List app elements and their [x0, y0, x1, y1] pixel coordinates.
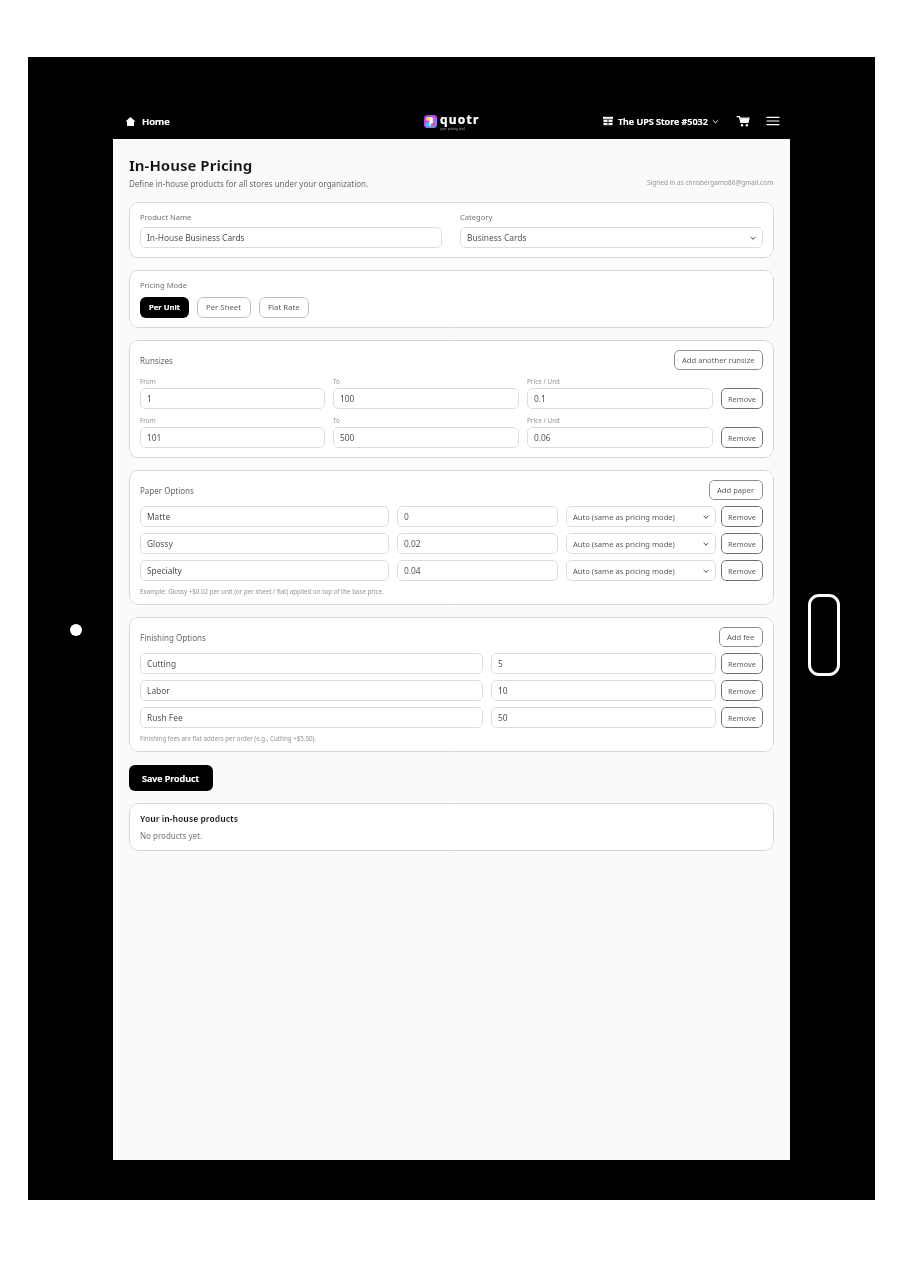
- button[interactable]: 500: [333, 427, 519, 448]
- staticText: Per Unit: [149, 302, 180, 313]
- staticText: Remove: [728, 433, 756, 443]
- button[interactable]: Remove: [721, 506, 763, 527]
- button[interactable]: Remove: [721, 533, 763, 554]
- button[interactable]: Per Sheet: [197, 297, 251, 318]
- button[interactable]: Home: [121, 112, 174, 131]
- staticText: Add paper: [717, 485, 755, 495]
- button[interactable]: quotr: [424, 111, 480, 131]
- staticText: 0.02: [404, 538, 421, 549]
- staticText: No products yet.: [140, 830, 203, 841]
- staticText: Auto (same as pricing mode): [573, 566, 675, 576]
- button[interactable]: Add another runsize: [674, 350, 763, 370]
- staticText: Per Sheet: [206, 302, 242, 313]
- button[interactable]: 0.02: [397, 533, 558, 554]
- button[interactable]: Specialty: [140, 560, 389, 581]
- button[interactable]: Matte: [140, 506, 389, 527]
- staticText: 5: [498, 658, 503, 669]
- staticText: your pricing tool: [440, 127, 465, 131]
- button[interactable]: Auto (same as pricing mode): [566, 533, 716, 554]
- button[interactable]: Remove: [721, 427, 763, 448]
- staticText: Rush Fee: [147, 712, 183, 723]
- button[interactable]: 1: [140, 388, 325, 409]
- button[interactable]: Flat Rate: [259, 297, 309, 318]
- staticText: Pricing Mode: [140, 280, 188, 290]
- staticText: From: [140, 377, 156, 386]
- staticText: 101: [147, 432, 162, 443]
- button[interactable]: Save Product: [129, 765, 213, 791]
- staticText: Remove: [728, 512, 756, 522]
- staticText: Price / Unit: [527, 416, 561, 425]
- button[interactable]: 0: [397, 506, 558, 527]
- staticText: Remove: [728, 659, 756, 669]
- staticText: Labor: [147, 685, 170, 696]
- staticText: 0.1: [534, 393, 546, 404]
- staticText: Add another runsize: [682, 355, 755, 365]
- staticText: Remove: [728, 394, 756, 404]
- staticText: Home: [142, 115, 170, 128]
- staticText: In-House Pricing: [129, 155, 253, 175]
- staticText: From: [140, 416, 156, 425]
- button[interactable]: 101: [140, 427, 325, 448]
- staticText: Remove: [728, 566, 756, 576]
- button[interactable]: Auto (same as pricing mode): [566, 560, 716, 581]
- staticText: Auto (same as pricing mode): [573, 512, 675, 522]
- button[interactable]: Add fee: [719, 627, 763, 647]
- staticText: Your in-house products: [140, 813, 238, 825]
- button[interactable]: Glossy: [140, 533, 389, 554]
- button[interactable]: Remove: [721, 653, 763, 674]
- button[interactable]: 5: [491, 653, 716, 674]
- button[interactable]: Cart: [734, 112, 752, 130]
- staticText: Add fee: [727, 632, 755, 642]
- button[interactable]: Rush Fee: [140, 707, 483, 728]
- button[interactable]: In-House Business Cards: [140, 227, 442, 248]
- staticText: To: [333, 377, 340, 386]
- staticText: quotr: [440, 111, 480, 127]
- staticText: In-House Business Cards: [147, 232, 245, 243]
- button[interactable]: Remove: [721, 680, 763, 701]
- button[interactable]: Auto (same as pricing mode): [566, 506, 716, 527]
- button[interactable]: The UPS Store #5032: [600, 112, 722, 130]
- staticText: Runsizes: [140, 355, 173, 366]
- staticText: To: [333, 416, 340, 425]
- staticText: Example: Glossy +$0.02 per unit (or per …: [140, 587, 384, 595]
- staticText: Save Product: [142, 772, 200, 784]
- staticText: Remove: [728, 713, 756, 723]
- staticText: Finishing Options: [140, 632, 206, 643]
- staticText: Business Cards: [467, 232, 527, 243]
- button[interactable]: 10: [491, 680, 716, 701]
- staticText: Price / Unit: [527, 377, 561, 386]
- button[interactable]: Cutting: [140, 653, 483, 674]
- staticText: 0.06: [534, 432, 551, 443]
- staticText: Remove: [728, 686, 756, 696]
- staticText: Auto (same as pricing mode): [573, 539, 675, 549]
- button[interactable]: 50: [491, 707, 716, 728]
- button[interactable]: 0.1: [527, 388, 713, 409]
- staticText: 1: [147, 393, 152, 404]
- staticText: 500: [340, 432, 355, 443]
- staticText: Cutting: [147, 658, 177, 669]
- staticText: Finishing fees are flat adders per order…: [140, 734, 317, 742]
- button[interactable]: Business Cards: [460, 227, 763, 248]
- button[interactable]: 0.04: [397, 560, 558, 581]
- staticText: Remove: [728, 539, 756, 549]
- staticText: Category: [460, 212, 493, 222]
- staticText: Matte: [147, 511, 171, 522]
- button[interactable]: Remove: [721, 388, 763, 409]
- button[interactable]: Remove: [721, 560, 763, 581]
- button[interactable]: 100: [333, 388, 519, 409]
- button[interactable]: Labor: [140, 680, 483, 701]
- staticText: Define in-house products for all stores …: [129, 178, 369, 189]
- button[interactable]: Add paper: [709, 480, 763, 500]
- staticText: Specialty: [147, 565, 182, 576]
- button[interactable]: Per Unit: [140, 297, 189, 318]
- button[interactable]: Remove: [721, 707, 763, 728]
- button[interactable]: Menu: [764, 112, 782, 130]
- staticText: The UPS Store #5032: [618, 115, 708, 127]
- staticText: Product Name: [140, 212, 192, 222]
- staticText: 0.04: [404, 565, 421, 576]
- staticText: Glossy: [147, 538, 173, 549]
- staticText: 0: [404, 511, 409, 522]
- staticText: Paper Options: [140, 485, 194, 496]
- button[interactable]: 0.06: [527, 427, 713, 448]
- staticText: 100: [340, 393, 355, 404]
